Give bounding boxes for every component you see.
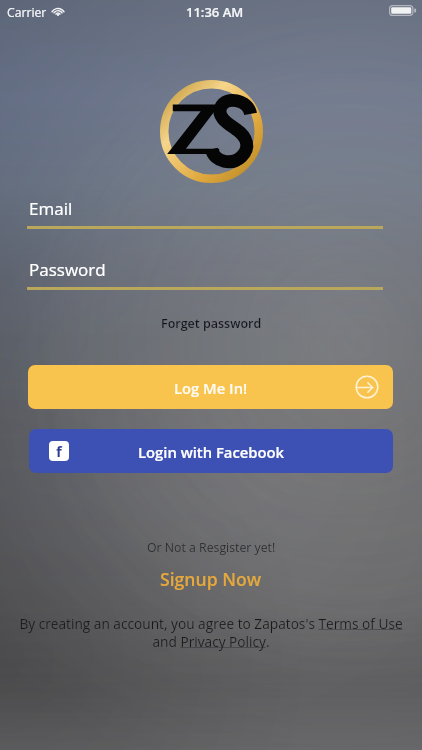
staticText: Password — [29, 258, 106, 281]
button[interactable]: Log Me In! — [28, 365, 393, 409]
staticText: Forget password — [161, 315, 262, 332]
button[interactable]: Forget password — [0, 315, 422, 332]
staticText: f — [56, 441, 62, 461]
staticText: Log Me In! — [174, 378, 248, 398]
other: Log in — [355, 375, 379, 399]
staticText: Signup Now — [160, 567, 262, 591]
staticText: By creating an account, you agree to Zap… — [19, 614, 403, 651]
staticText: Carrier — [7, 4, 47, 21]
button[interactable]: Login with Facebook — [29, 429, 393, 473]
staticText: 11:36 AM — [186, 3, 244, 21]
staticText: Or Not a Resgister yet! — [147, 539, 276, 556]
staticText: Email — [29, 197, 73, 220]
staticText: Login with Facebook — [138, 442, 285, 462]
button[interactable]: Signup Now — [0, 567, 422, 591]
